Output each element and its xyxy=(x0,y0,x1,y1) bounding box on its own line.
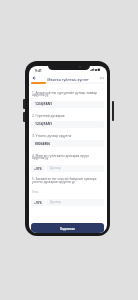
staticText: Мөнгөн гуйлтын хүсэлт xyxy=(29,77,107,82)
staticText: +976 xyxy=(34,166,42,170)
staticText: 88064806 xyxy=(35,141,51,145)
staticText: Хадгалах xyxy=(60,226,75,230)
button[interactable] xyxy=(31,199,45,206)
button[interactable] xyxy=(46,165,104,172)
button[interactable] xyxy=(31,165,45,172)
staticText: +976 xyxy=(34,200,42,204)
staticText: 1. Анхан шатны сургуулийн дугаар заавар xyxy=(32,91,97,95)
button[interactable]: More options xyxy=(98,74,105,81)
staticText: Утас xyxy=(32,190,39,194)
staticText: оруулна уу xyxy=(32,93,49,97)
staticText: 1234JFAN1 xyxy=(35,121,53,125)
staticText: 5. Захиалгат нэг онцгой байдлын хуваарь xyxy=(32,177,97,181)
staticText: Дугаар xyxy=(50,166,61,170)
button[interactable]: Back xyxy=(30,74,37,81)
button[interactable] xyxy=(31,101,104,108)
staticText: 9:41 xyxy=(35,68,42,73)
button[interactable]: Хадгалах xyxy=(31,223,104,233)
staticText: 2. Гэрээний дугаараа xyxy=(32,114,65,118)
staticText: утасны дугаараа оруулна уу xyxy=(32,180,75,184)
staticText: оруулна уу xyxy=(32,156,49,160)
staticText: 3. Утасны дугаар оруулна xyxy=(32,134,72,138)
button[interactable] xyxy=(31,140,104,147)
staticText: 1234JFAN1 xyxy=(35,101,53,105)
staticText: Дугаар xyxy=(50,200,61,204)
button[interactable] xyxy=(46,199,104,206)
button[interactable] xyxy=(31,121,104,128)
staticText: 4. Мөнгөн гуйлгааны дугаараа оруул xyxy=(32,154,89,158)
